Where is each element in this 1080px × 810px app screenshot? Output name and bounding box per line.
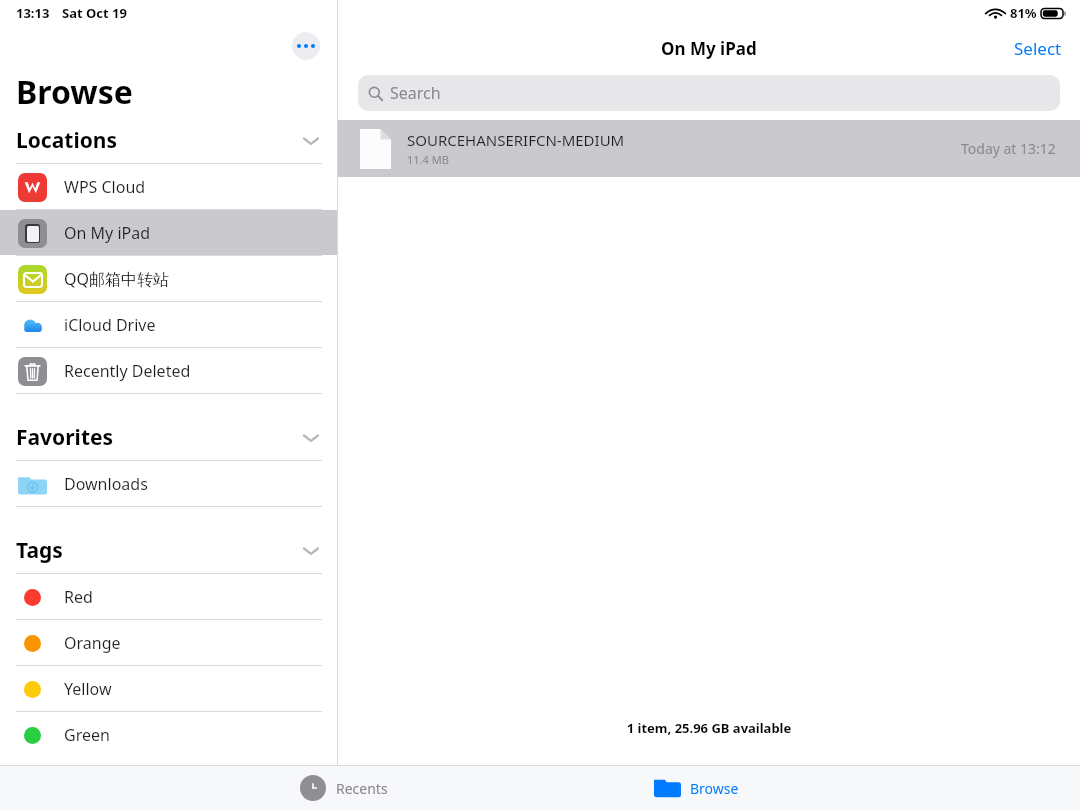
staticText: Recently Deleted <box>64 360 191 382</box>
button[interactable]: WPS Cloud <box>0 164 337 209</box>
button[interactable]: Yellow <box>0 666 337 711</box>
button[interactable]: Recents <box>290 766 398 810</box>
button[interactable]: Recently Deleted <box>0 348 337 393</box>
staticText: Yellow <box>64 678 112 700</box>
button[interactable]: On My iPad <box>0 210 337 255</box>
staticText: QQ邮箱中转站 <box>64 268 169 290</box>
staticText: Locations <box>16 126 117 155</box>
staticText: SOURCEHANSERIFCN-MEDIUM <box>407 130 625 150</box>
staticText: Downloads <box>64 473 148 495</box>
staticText: 1 item, 25.96 GB available <box>338 719 1080 737</box>
button[interactable]: Green <box>0 712 337 757</box>
staticText: Recents <box>336 779 388 798</box>
staticText: Select <box>1014 37 1062 60</box>
button[interactable]: Tags <box>16 528 319 573</box>
button[interactable]: Red <box>0 574 337 619</box>
button[interactable]: Browse <box>644 766 749 810</box>
staticText: Favorites <box>16 423 114 452</box>
button[interactable]: More options <box>292 32 320 60</box>
staticText: Red <box>64 586 93 608</box>
staticText: Today at 13:12 <box>961 139 1056 158</box>
staticText: Green <box>64 724 110 746</box>
staticText: WPS Cloud <box>64 176 146 198</box>
button[interactable]: Search <box>358 75 1060 111</box>
staticText: iCloud Drive <box>64 314 156 336</box>
button[interactable]: QQ邮箱中转站 <box>0 256 337 301</box>
staticText: On My iPad <box>661 37 757 60</box>
staticText: Search <box>390 82 441 104</box>
staticText: 13:13 <box>16 4 50 22</box>
button[interactable]: iCloud Drive <box>0 302 337 347</box>
staticText: Browse <box>690 779 739 798</box>
staticText: On My iPad <box>64 222 151 244</box>
staticText: Orange <box>64 632 121 654</box>
button[interactable]: Orange <box>0 620 337 665</box>
button[interactable]: Downloads <box>0 461 337 506</box>
button[interactable]: Select <box>1008 33 1068 64</box>
button[interactable]: Locations <box>16 118 319 163</box>
staticText: Browse <box>16 70 133 114</box>
staticText: 11.4 MB <box>407 152 449 167</box>
staticText: 81% <box>1010 4 1037 22</box>
staticText: Tags <box>16 536 63 565</box>
button[interactable]: SOURCEHANSERIFCN-MEDIUM <box>338 120 1080 177</box>
staticText: Sat Oct 19 <box>62 4 127 22</box>
button[interactable]: Favorites <box>16 415 319 460</box>
